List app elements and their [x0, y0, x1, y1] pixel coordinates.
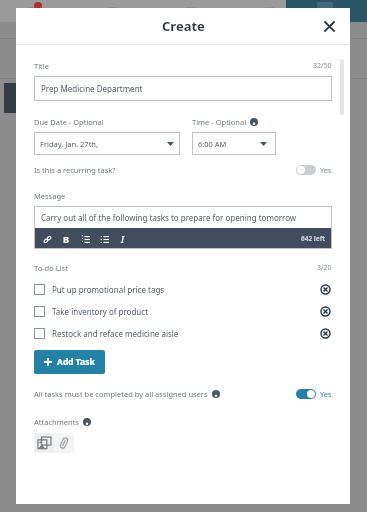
button[interactable]: Put up promotional price tags — [34, 278, 332, 300]
staticText: Message — [34, 191, 66, 201]
button[interactable]: Add Task — [34, 350, 105, 374]
staticText: Prep Medicine Department — [41, 83, 143, 94]
staticText: Attachments — [34, 417, 79, 427]
button[interactable]: Remove task — [318, 304, 332, 318]
staticText: Carry out all of the following tasks to … — [41, 212, 297, 223]
staticText: Take inventory of product — [52, 306, 149, 317]
button[interactable]: Insert link — [41, 233, 53, 245]
staticText: 6:00 AM — [198, 139, 227, 149]
button[interactable]: Take inventory of product — [34, 300, 332, 322]
button[interactable]: Bold — [60, 233, 72, 245]
staticText: To-do List — [34, 263, 68, 273]
staticText: Title — [34, 61, 49, 71]
button[interactable]: Yes — [296, 165, 332, 175]
button[interactable]: Yes — [296, 389, 332, 399]
staticText: Restock and reface medicine aisle — [52, 328, 179, 339]
button[interactable]: Add image — [34, 433, 54, 453]
staticText: Due Date - Optional — [34, 117, 104, 127]
staticText: Friday, Jan. 27th, 2023 — [40, 139, 103, 149]
button[interactable]: Remove task — [318, 326, 332, 340]
button[interactable]: Friday, Jan. 27th, 2023 — [34, 132, 180, 155]
staticText: Create — [162, 17, 205, 35]
button[interactable]: Attach file — [54, 433, 74, 453]
button[interactable]: Close — [316, 13, 342, 39]
staticText: 642 left — [301, 234, 325, 243]
staticText: Yes — [320, 165, 332, 175]
button[interactable]: 6:00 AM — [192, 132, 276, 155]
staticText: Time - Optional — [192, 117, 247, 127]
staticText: Yes — [320, 389, 332, 399]
button[interactable]: Italic — [117, 233, 129, 245]
staticText: 32/50 — [313, 61, 332, 71]
button[interactable]: Restock and reface medicine aisle — [34, 322, 332, 344]
staticText: Is this a recurring task? — [34, 165, 116, 175]
button[interactable]: Remove task — [318, 282, 332, 296]
staticText: Put up promotional price tags — [52, 284, 165, 295]
button[interactable]: Prep Medicine Department — [34, 76, 332, 101]
staticText: I — [121, 233, 125, 245]
button[interactable]: Numbered list — [79, 233, 91, 245]
staticText: B — [63, 233, 69, 245]
staticText: All tasks must be completed by all assig… — [34, 389, 208, 399]
staticText: Add Task — [57, 356, 95, 368]
staticText: 3/20 — [317, 263, 332, 273]
button[interactable]: Bulleted list — [98, 233, 110, 245]
